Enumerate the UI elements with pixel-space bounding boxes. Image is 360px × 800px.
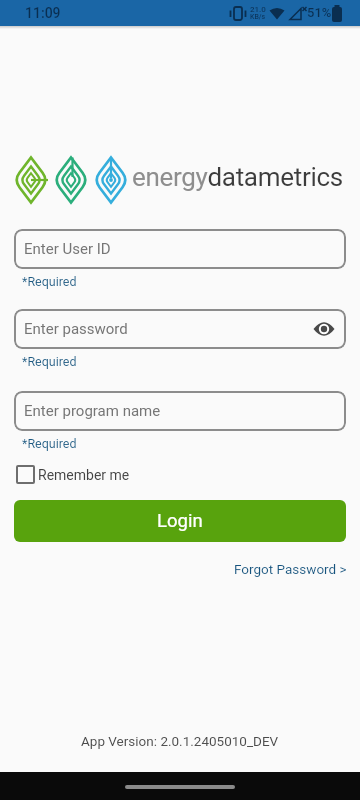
button[interactable]: Forgot Password >: [234, 561, 347, 577]
staticText: Login: [157, 510, 203, 532]
staticText: Enter password: [24, 320, 128, 338]
staticText: KB/s: [250, 13, 266, 21]
staticText: 11:09: [25, 5, 61, 21]
button[interactable]: Enter password: [14, 309, 346, 349]
staticText: 51%: [307, 5, 332, 20]
staticText: App Version: 2.0.1.2405010_DEV: [81, 733, 279, 749]
button[interactable]: Remember me: [16, 465, 130, 484]
staticText: Remember me: [38, 467, 130, 483]
staticText: Enter program name: [24, 402, 161, 420]
staticText: *Required: [22, 274, 77, 289]
staticText: *Required: [22, 354, 77, 369]
button[interactable]: Enter User ID: [14, 229, 346, 269]
button[interactable]: Login: [14, 500, 346, 542]
staticText: 21.0: [250, 5, 266, 14]
staticText: *Required: [22, 436, 77, 451]
staticText: energydatametrics: [132, 162, 343, 192]
button[interactable]: Enter program name: [14, 391, 346, 431]
staticText: Enter User ID: [24, 240, 111, 258]
